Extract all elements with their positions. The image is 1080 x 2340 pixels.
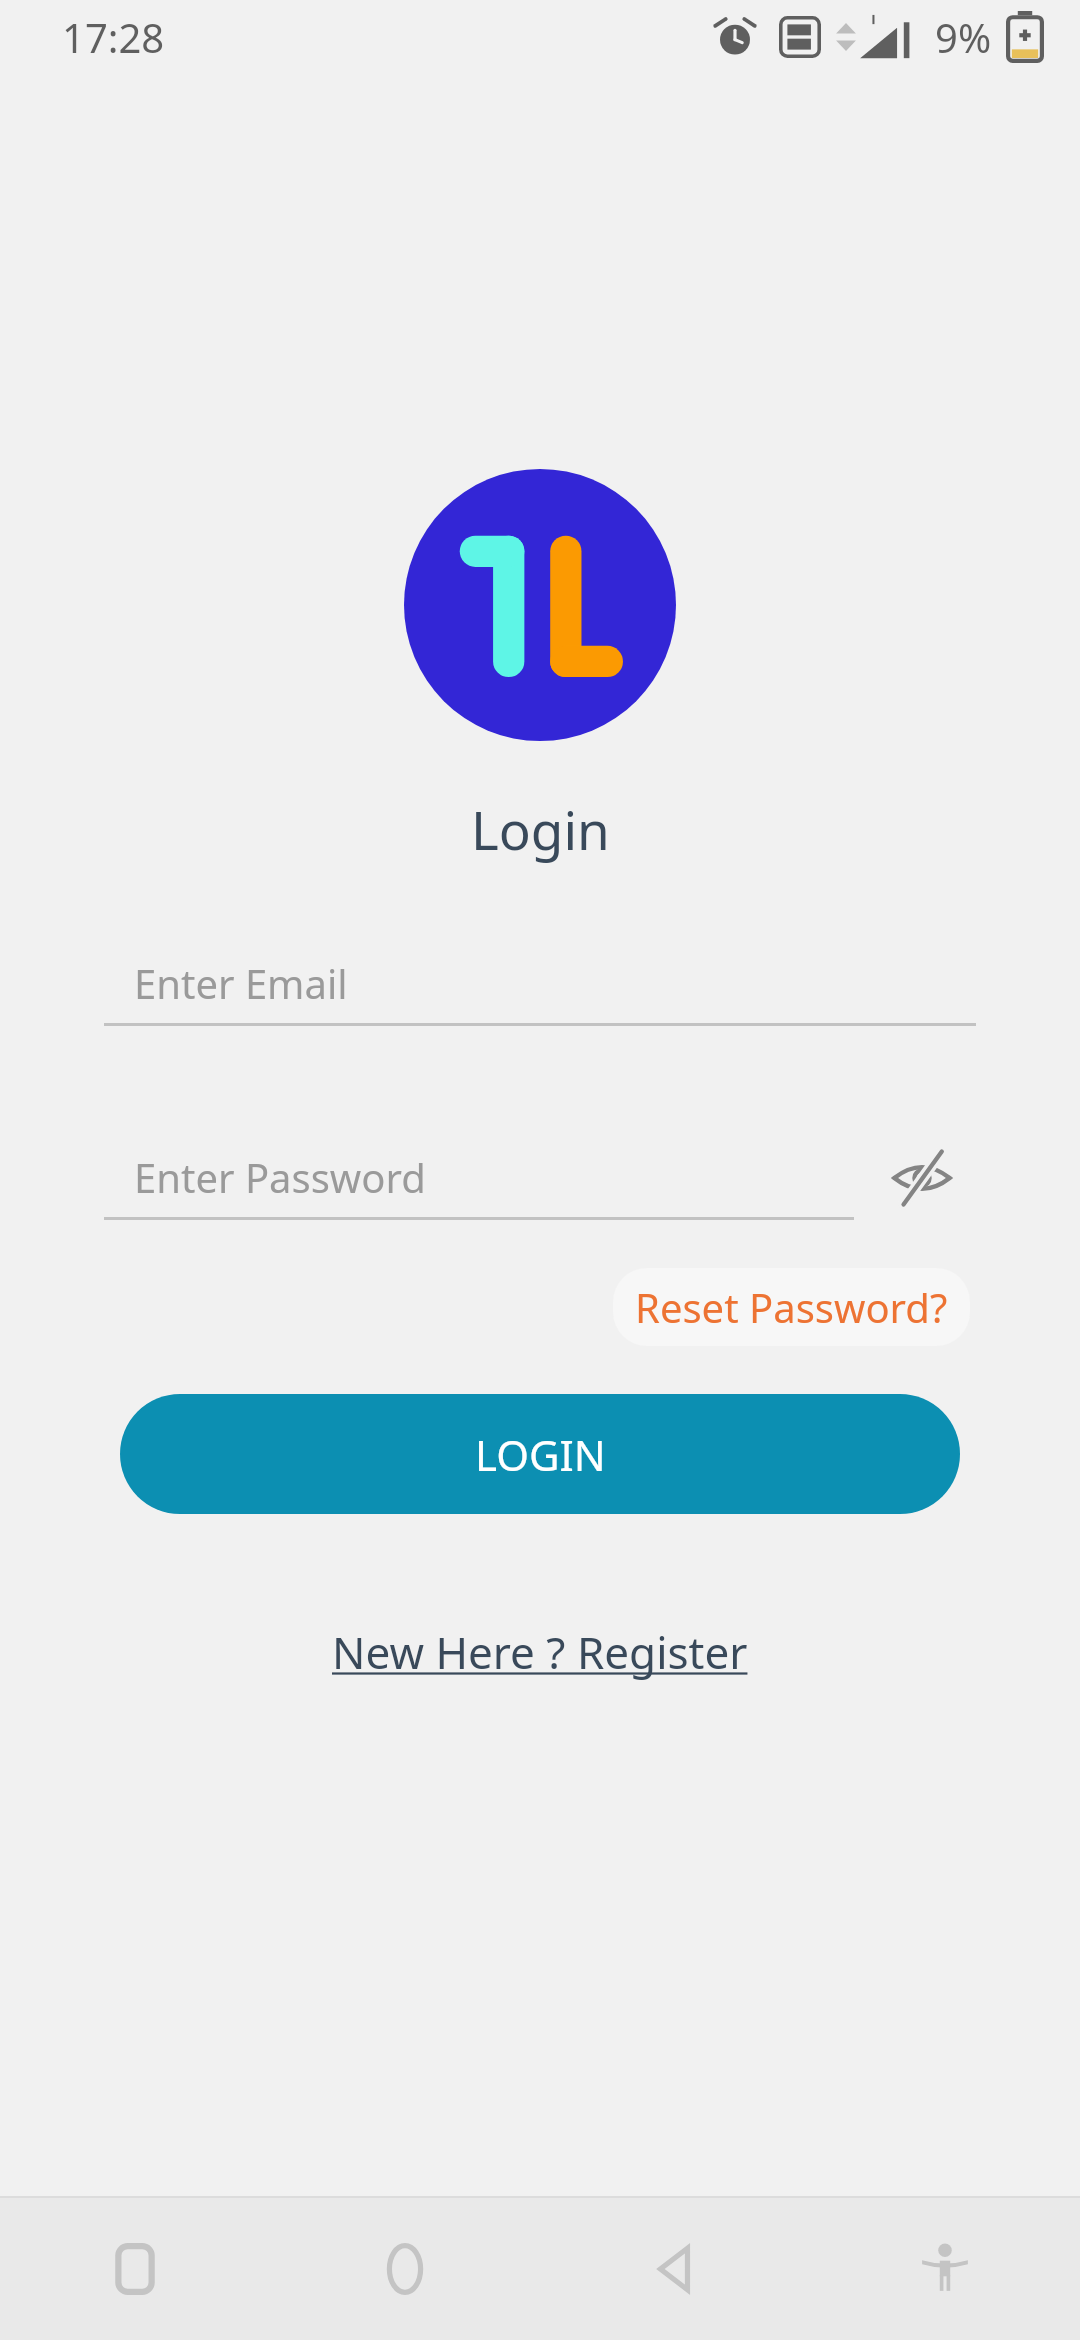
button[interactable]: Accessibility — [810, 2198, 1080, 2340]
staticText: Reset Password? — [635, 1280, 948, 1334]
button[interactable]: Enter Password — [104, 1137, 854, 1220]
button[interactable]: Show password — [868, 1124, 976, 1232]
staticText: New Here ? Register — [332, 1622, 748, 1682]
button[interactable]: Home — [270, 2198, 540, 2340]
staticText: LOGIN — [475, 1426, 606, 1483]
staticText: Enter Password — [134, 1150, 426, 1204]
button[interactable]: Back — [540, 2198, 810, 2340]
button[interactable]: New Here ? Register — [312, 1612, 768, 1692]
staticText: Login — [471, 793, 610, 865]
staticText: 17:28 — [62, 10, 165, 64]
staticText: Enter Email — [134, 956, 348, 1010]
button[interactable]: Recents — [0, 2198, 270, 2340]
button[interactable]: LOGIN — [120, 1394, 960, 1514]
button[interactable]: Reset Password? — [613, 1268, 970, 1346]
button[interactable]: Enter Email — [104, 943, 976, 1026]
staticText: 9% — [935, 10, 992, 64]
